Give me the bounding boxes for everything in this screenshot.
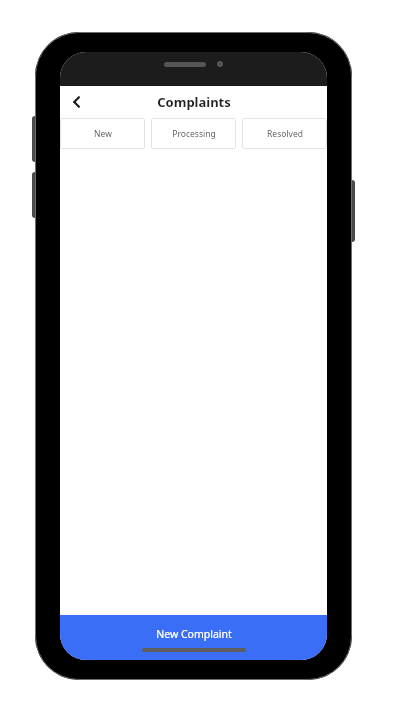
- staticText: Complaints: [157, 93, 231, 111]
- button[interactable]: Processing: [151, 118, 236, 149]
- staticText: Resolved: [267, 128, 303, 140]
- button[interactable]: New Complaint: [60, 615, 327, 660]
- button[interactable]: Back: [60, 86, 94, 117]
- staticText: Processing: [172, 128, 216, 140]
- button[interactable]: Resolved: [242, 118, 327, 149]
- staticText: New Complaint: [156, 627, 232, 641]
- staticText: New: [94, 128, 112, 140]
- button[interactable]: New: [60, 118, 145, 149]
